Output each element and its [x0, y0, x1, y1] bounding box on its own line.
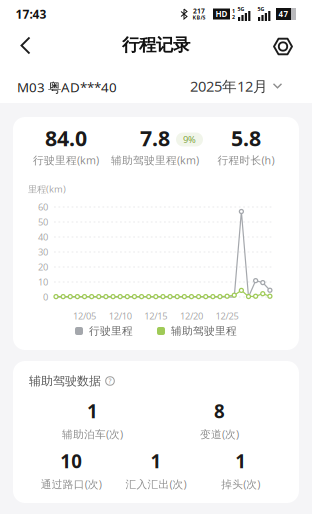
staticText: 50: [38, 216, 48, 228]
staticText: 40: [38, 231, 48, 243]
staticText: 217: [193, 7, 205, 15]
staticText: 1: [232, 7, 235, 15]
staticText: 行程记录: [122, 34, 190, 56]
staticText: 5.8: [231, 124, 261, 152]
staticText: ?: [108, 377, 111, 385]
staticText: 里程(km): [28, 183, 66, 195]
button[interactable]: [5, 25, 45, 65]
staticText: 5G: [237, 5, 244, 13]
staticText: 9%: [183, 133, 196, 146]
button[interactable]: M03 粤AD***40: [17, 67, 217, 107]
button[interactable]: 2025年12月: [132, 66, 282, 106]
staticText: 47: [278, 9, 288, 19]
staticText: HD: [215, 9, 227, 19]
staticText: 汇入汇出(次): [125, 477, 186, 491]
staticText: 2025年12月: [190, 76, 268, 96]
staticText: 变道(次): [200, 427, 239, 441]
staticText: 30: [38, 246, 48, 258]
staticText: 12/25: [216, 310, 239, 322]
staticText: 辅助泊车(次): [62, 427, 123, 441]
button[interactable]: [263, 26, 303, 66]
staticText: 12/05: [73, 310, 96, 322]
staticText: 行驶里程: [89, 324, 133, 337]
staticText: 掉头(次): [221, 477, 260, 491]
staticText: 12/20: [180, 310, 203, 322]
staticText: 12/10: [109, 310, 132, 322]
staticText: 10: [60, 449, 82, 473]
staticText: 10: [38, 276, 48, 288]
staticText: KB/S: [192, 14, 205, 21]
staticText: 1: [87, 399, 98, 423]
staticText: 辅助驾驶数据: [29, 374, 101, 388]
staticText: 20: [38, 261, 48, 273]
staticText: 辅助驾驶里程(km): [111, 153, 199, 167]
staticText: 2: [232, 13, 235, 21]
staticText: 17:43: [15, 6, 46, 22]
staticText: 0: [43, 291, 48, 303]
staticText: 辅助驾驶里程: [171, 324, 237, 337]
staticText: 通过路口(次): [41, 477, 102, 491]
staticText: 60: [38, 201, 48, 213]
staticText: 行程时长(h): [217, 153, 274, 167]
staticText: 行驶里程(km): [33, 153, 99, 167]
staticText: 8: [214, 399, 225, 423]
staticText: 1: [235, 449, 246, 473]
staticText: 84.0: [45, 124, 87, 152]
staticText: 1: [150, 449, 161, 473]
staticText: M03 粤AD***40: [17, 78, 117, 96]
staticText: 7.8: [140, 124, 170, 152]
button[interactable]: 辅助驾驶数据: [29, 370, 299, 392]
staticText: 5G: [257, 5, 264, 13]
staticText: 12/15: [144, 310, 167, 322]
